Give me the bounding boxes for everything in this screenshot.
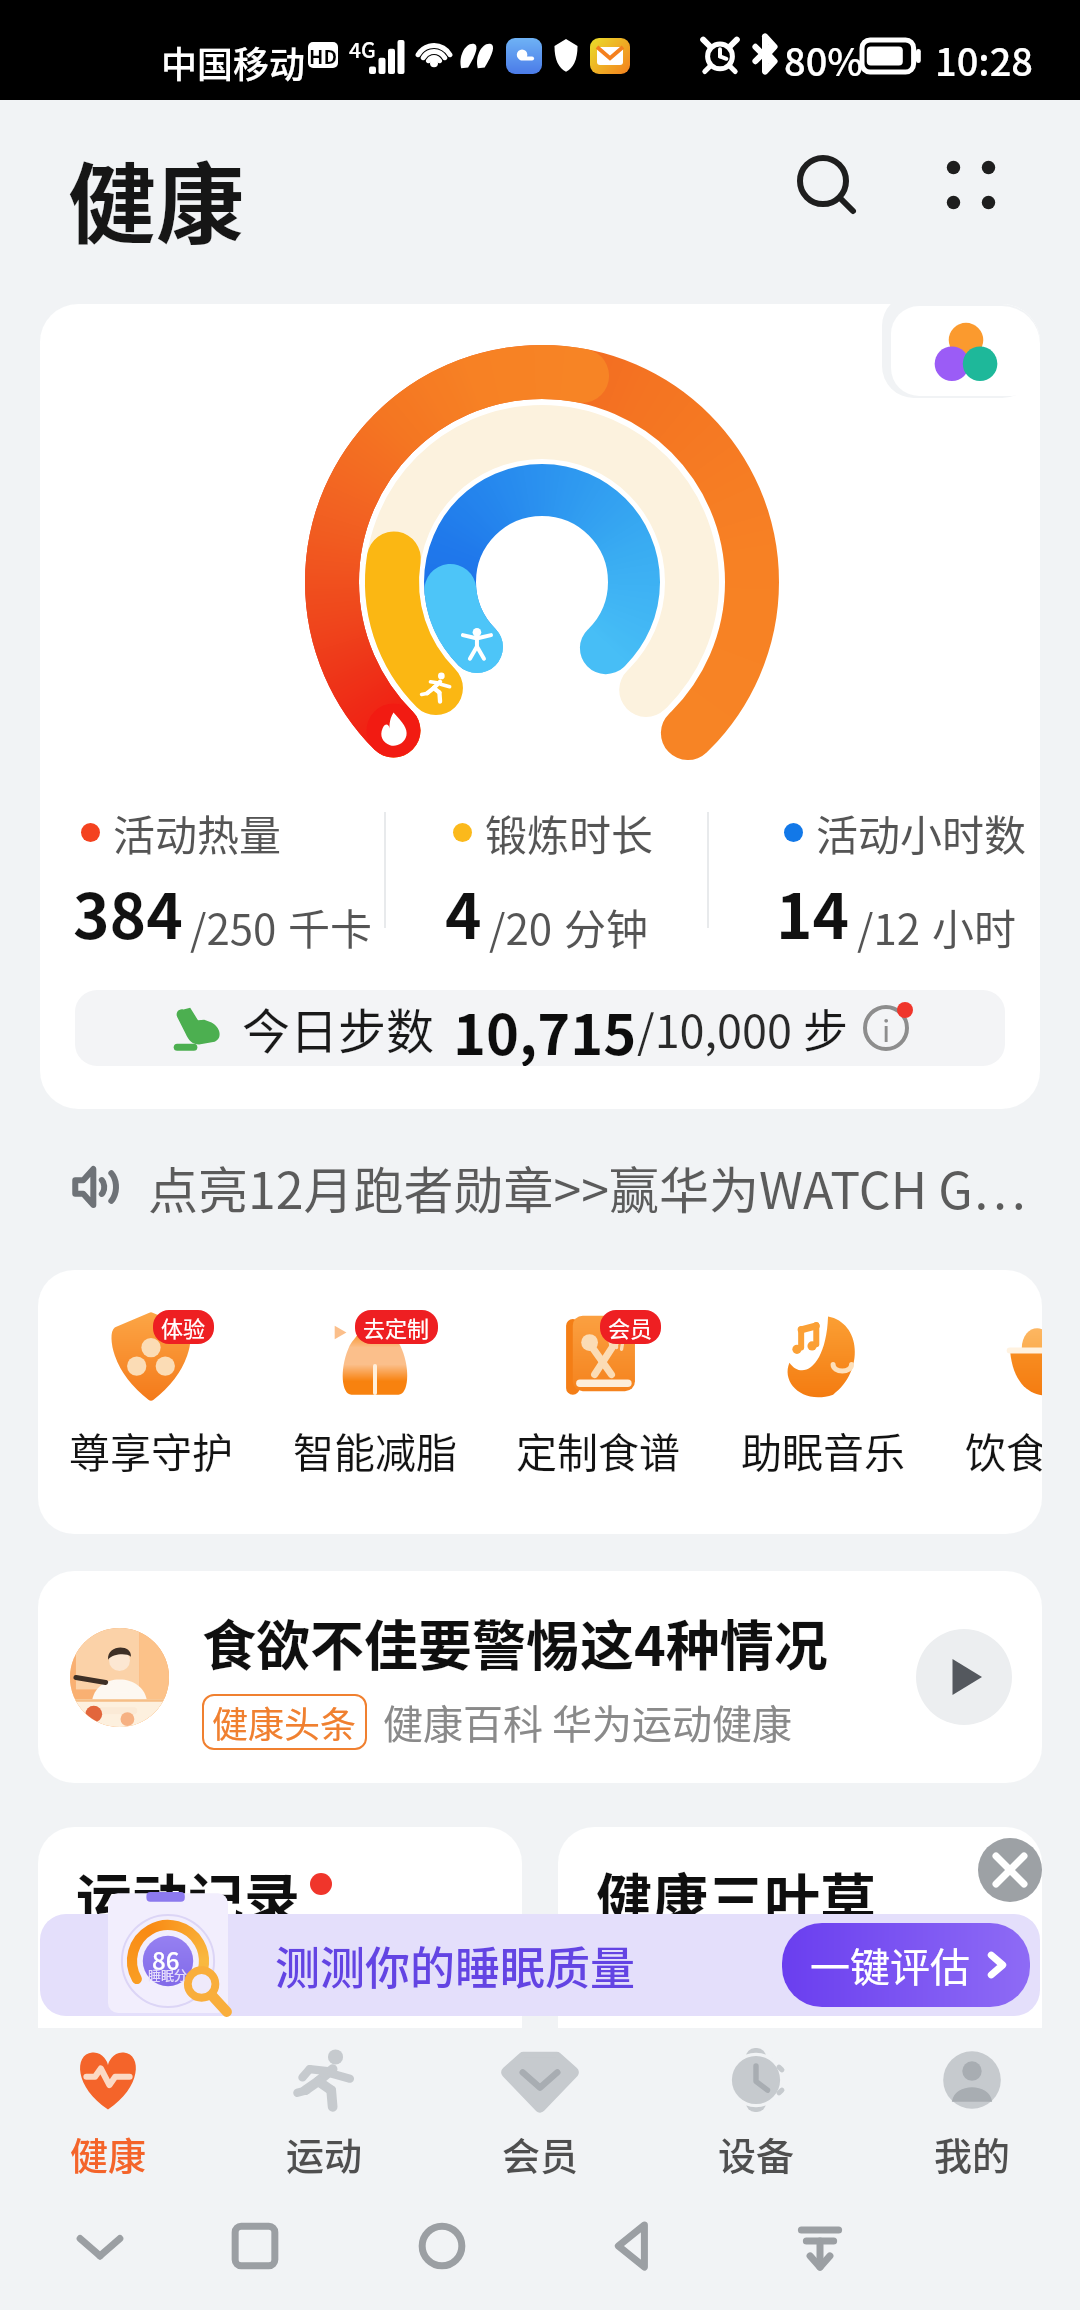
button[interactable]: Profile	[891, 306, 1040, 396]
button[interactable]: 运动记录	[38, 1827, 522, 2167]
staticText: 小时	[932, 896, 1017, 957]
staticText: 助眠音乐	[741, 1420, 905, 1479]
staticText: 一键评估	[810, 1936, 970, 1994]
button[interactable]: 会员	[432, 2028, 648, 2183]
button[interactable]: 活动热量	[40, 304, 1040, 1109]
staticText: 活动热量	[113, 802, 282, 863]
staticText: 会员	[502, 2126, 579, 2181]
staticText: 会员	[608, 1311, 653, 1343]
staticText: 千卡	[288, 896, 373, 957]
button[interactable]: Play	[916, 1629, 1012, 1725]
button[interactable]: 健康	[0, 2028, 216, 2183]
button[interactable]: 今日步数	[75, 990, 1005, 1066]
staticText: 10,715	[453, 990, 637, 1066]
staticText: 384	[73, 867, 183, 957]
button[interactable]: 测测你的睡眠质量	[40, 1914, 1040, 2016]
button[interactable]: 设备	[648, 2028, 864, 2183]
staticText: 80%	[784, 32, 864, 87]
staticText: 点亮12月跑者勋章>>赢华为WATCH G…	[148, 1151, 1026, 1223]
staticText: 分钟	[564, 896, 649, 957]
staticText: 中国移动	[161, 36, 306, 88]
staticText: 运动记录	[76, 1855, 300, 1936]
staticText: 4	[445, 867, 482, 957]
staticText: 测测你的睡眠质量	[275, 1933, 636, 1998]
staticText: 锻炼时长	[485, 802, 654, 863]
staticText: 4G	[349, 34, 376, 64]
button[interactable]: Recents	[195, 2186, 315, 2306]
staticText: 设备	[718, 2126, 795, 2181]
button[interactable]: 我的	[864, 2028, 1080, 2183]
staticText: 健康头条	[212, 1696, 357, 1748]
staticText: 健康	[68, 134, 245, 261]
staticText: 86	[152, 1942, 180, 1977]
staticText: 健康百科 华为运动健康	[383, 1693, 792, 1751]
staticText: 14	[776, 867, 850, 957]
button[interactable]: 食欲不佳要警惕这4种情况	[38, 1571, 1042, 1783]
button[interactable]: 健康三叶草	[558, 1827, 1042, 2167]
button[interactable]: More options	[911, 125, 1031, 245]
staticText: 健康三叶草	[596, 1855, 876, 1936]
staticText: 食欲不佳要警惕这4种情况	[202, 1603, 828, 1681]
staticText: /10,000	[637, 996, 793, 1061]
staticText: 智能减脂	[293, 1420, 457, 1479]
staticText: 定制食谱	[516, 1420, 680, 1479]
staticText: 今日步数	[242, 993, 435, 1063]
staticText: 尊享守护	[69, 1420, 233, 1479]
staticText: 体验	[161, 1311, 206, 1343]
button[interactable]: 点亮12月跑者勋章>>赢华为WATCH G…	[74, 1132, 1080, 1242]
staticText: 睡眠分	[148, 1965, 188, 1984]
staticText: /250	[190, 896, 277, 957]
button[interactable]: 去定制	[270, 1270, 480, 1534]
button[interactable]: Close	[978, 1838, 1042, 1902]
staticText: 我的	[934, 2126, 1011, 2181]
staticText: 10:28	[935, 32, 1033, 87]
button[interactable]: Pull down	[760, 2186, 880, 2306]
staticText: 健康	[70, 2126, 147, 2181]
staticText: 步	[803, 996, 849, 1061]
button[interactable]: Collapse keyboard	[40, 2186, 160, 2306]
button[interactable]: 助眠音乐	[718, 1270, 928, 1534]
button[interactable]: Back	[572, 2186, 692, 2306]
button[interactable]: 一键评估	[782, 1923, 1030, 2007]
staticText: 去定制	[363, 1311, 430, 1343]
button[interactable]: 会员	[493, 1270, 703, 1534]
staticText: /20	[489, 896, 553, 957]
button[interactable]: 运动	[216, 2028, 432, 2183]
staticText: 饮食健康	[965, 1420, 1042, 1479]
staticText: 运动	[286, 2126, 363, 2181]
button[interactable]: 饮食健康	[942, 1270, 1042, 1534]
staticText: 活动小时数	[816, 802, 1027, 863]
button[interactable]: 体验	[46, 1270, 256, 1534]
button[interactable]: Search	[763, 121, 883, 241]
staticText: i	[882, 1007, 891, 1050]
staticText: /12	[857, 896, 921, 957]
button[interactable]: Home	[382, 2186, 502, 2306]
staticText: HD	[309, 42, 337, 68]
